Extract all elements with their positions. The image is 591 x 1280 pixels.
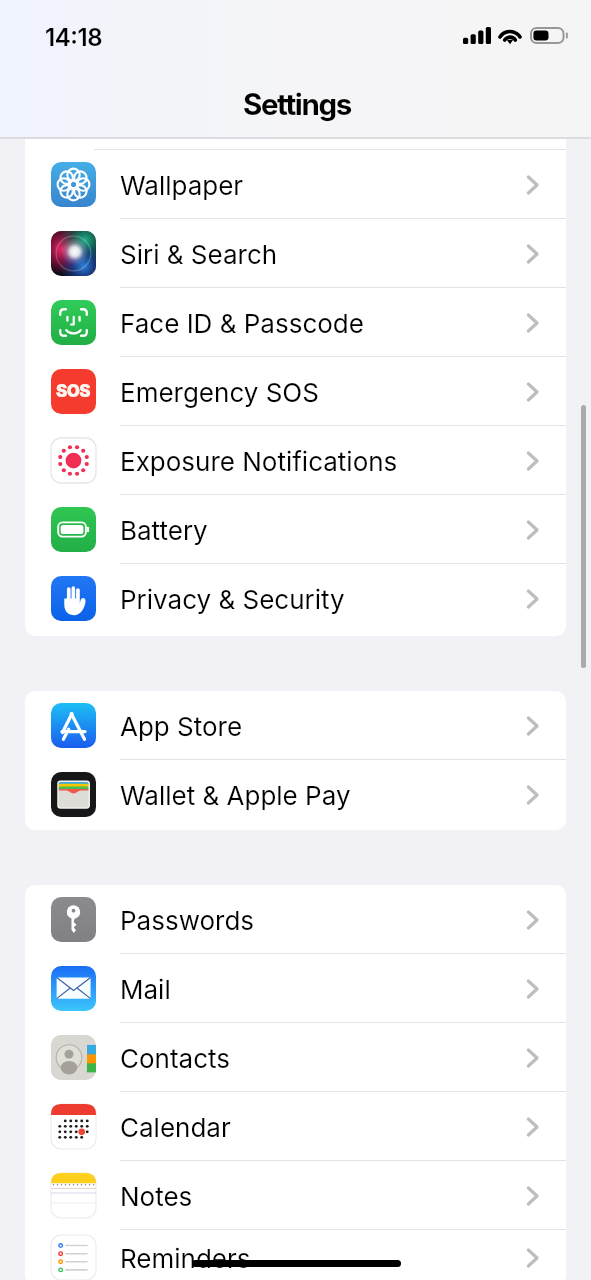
button[interactable]: App Store	[25, 691, 566, 760]
staticText: Reminders	[120, 1243, 251, 1274]
button[interactable]: Wallet & Apple Pay	[25, 760, 566, 829]
staticText: Face ID & Passcode	[120, 308, 364, 339]
staticText: Mail	[120, 974, 171, 1005]
staticText: App Store	[120, 711, 243, 742]
button[interactable]: Face ID & Passcode	[25, 288, 566, 357]
button[interactable]: Notes	[25, 1161, 566, 1230]
staticText: 14:18	[45, 23, 103, 52]
staticText: Battery	[120, 515, 208, 546]
button[interactable]: Wallpaper	[25, 150, 566, 219]
staticText: Emergency SOS	[120, 377, 319, 408]
button[interactable]: Privacy & Security	[25, 564, 566, 633]
button[interactable]	[25, 139, 566, 150]
staticText: Wallet & Apple Pay	[120, 780, 351, 811]
button[interactable]: Siri & Search	[25, 219, 566, 288]
button[interactable]: Reminders	[25, 1230, 566, 1280]
button[interactable]: Passwords	[25, 885, 566, 954]
staticText: Settings	[243, 86, 351, 122]
staticText: Privacy & Security	[120, 584, 345, 615]
staticText: Contacts	[120, 1043, 231, 1074]
button[interactable]: Battery	[25, 495, 566, 564]
button[interactable]: Mail	[25, 954, 566, 1023]
button[interactable]: Exposure Notifications	[25, 426, 566, 495]
staticText: Wallpaper	[120, 170, 244, 201]
staticText: Notes	[120, 1181, 193, 1212]
button[interactable]: Contacts	[25, 1023, 566, 1092]
staticText: Calendar	[120, 1112, 231, 1143]
button[interactable]: Calendar	[25, 1092, 566, 1161]
staticText: Exposure Notifications	[120, 446, 398, 477]
staticText: Siri & Search	[120, 239, 278, 270]
staticText: SOS	[56, 381, 91, 402]
button[interactable]: SOS	[25, 357, 566, 426]
staticText: Passwords	[120, 905, 255, 936]
